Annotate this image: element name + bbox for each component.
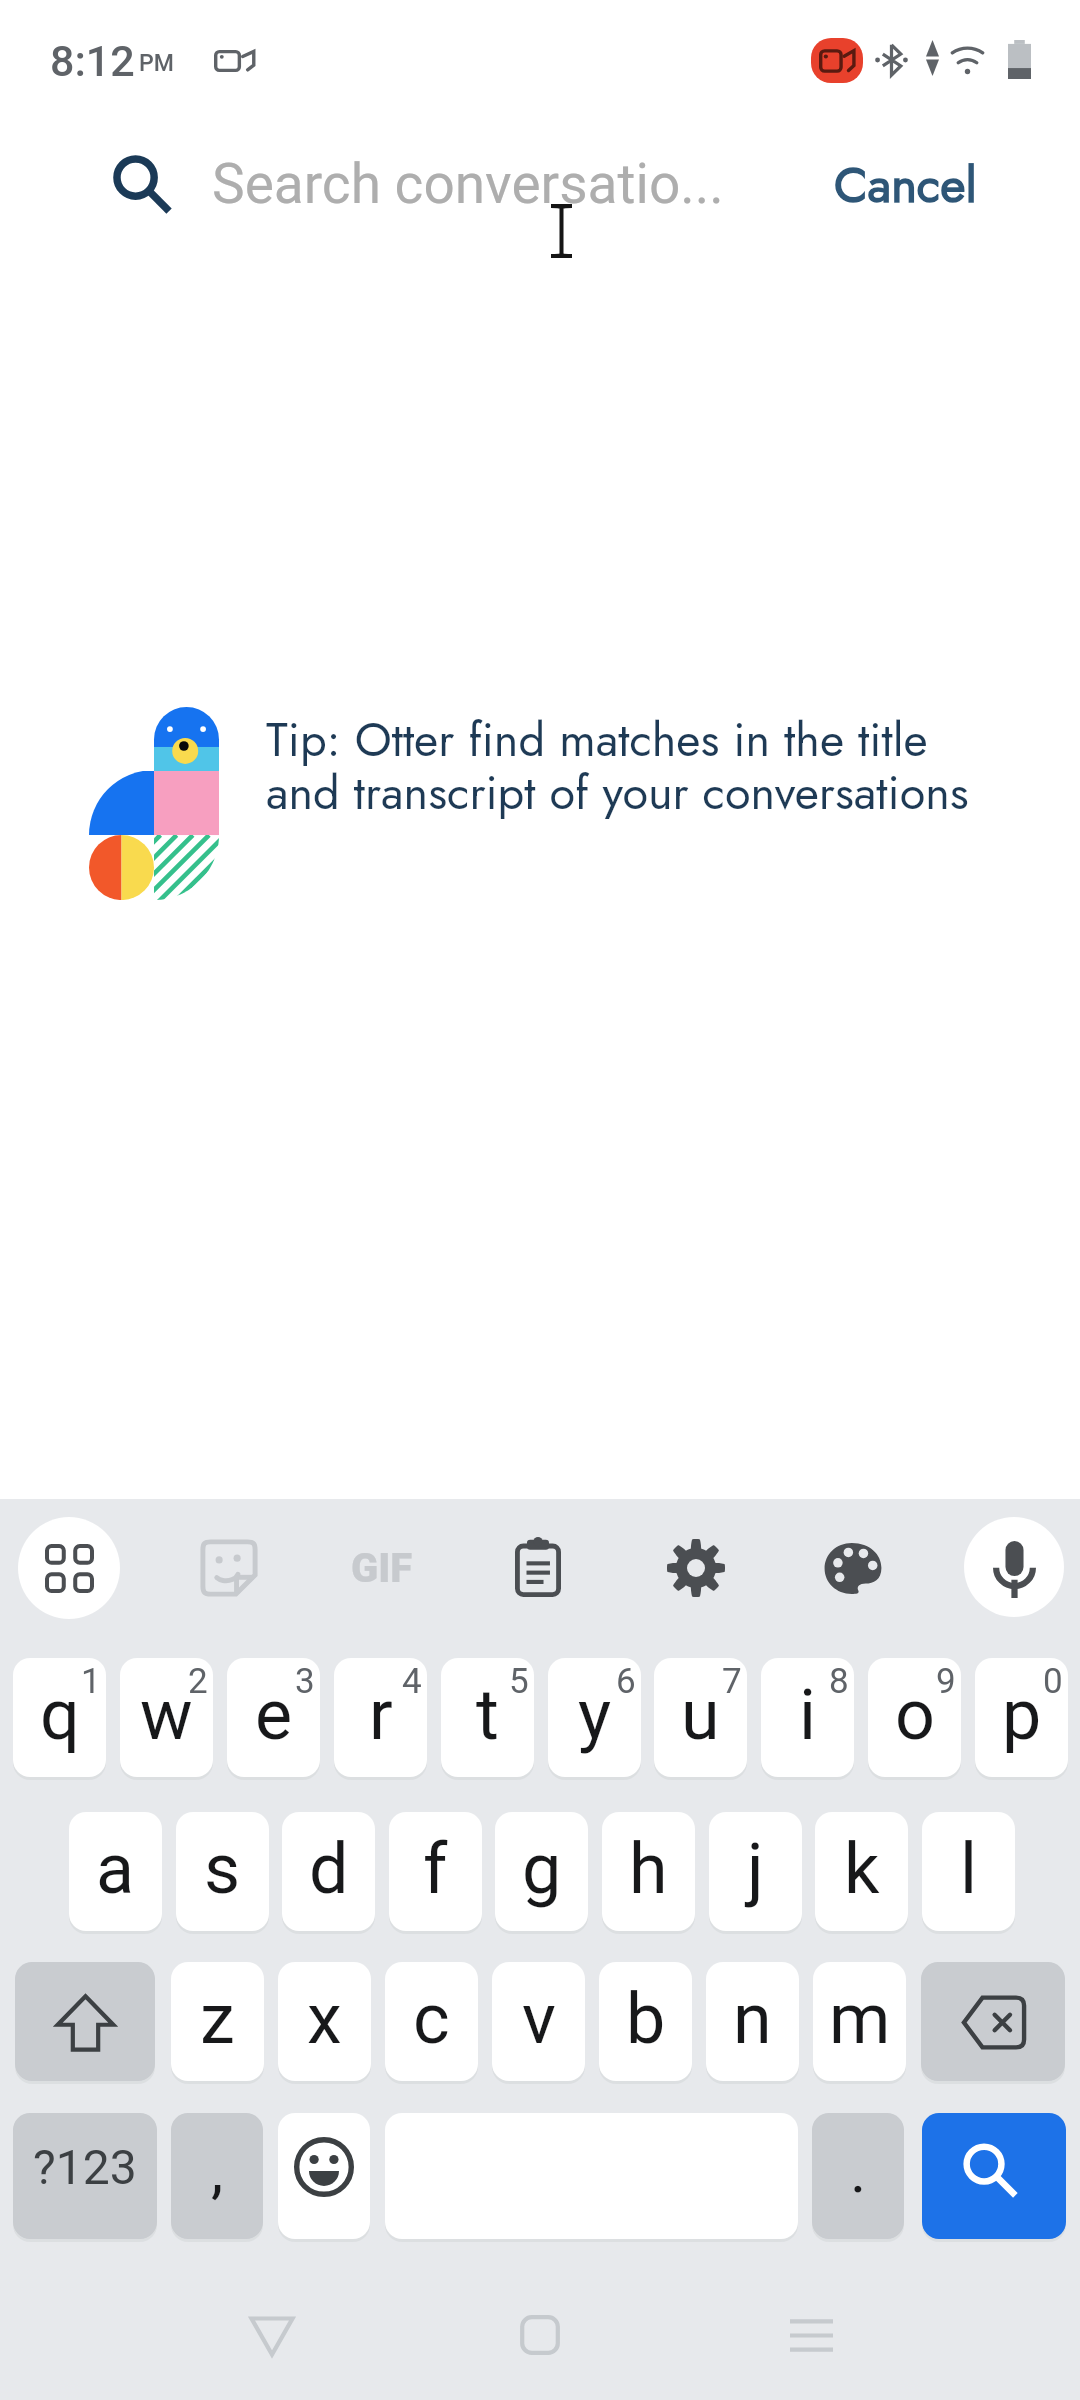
staticText: x xyxy=(307,1978,342,2060)
button[interactable]: Emoji xyxy=(278,2113,370,2239)
button[interactable]: Switch keyboard xyxy=(18,1517,120,1619)
staticText: a xyxy=(96,1828,135,1910)
button[interactable]: g xyxy=(495,1812,588,1931)
other: Search xyxy=(103,145,183,225)
staticText: n xyxy=(733,1978,772,2060)
button[interactable]: Settings xyxy=(646,1518,746,1618)
staticText: r xyxy=(369,1674,393,1756)
staticText: PM xyxy=(139,50,174,77)
staticText: ?123 xyxy=(33,2139,137,2195)
staticText: Cancel xyxy=(834,150,977,221)
staticText: 3 xyxy=(295,1661,315,1702)
staticText: 6 xyxy=(616,1661,636,1702)
staticText: 8:12 xyxy=(50,36,135,86)
button[interactable]: Backspace xyxy=(921,1962,1065,2081)
button[interactable]: m xyxy=(813,1962,906,2081)
button[interactable]: Theme xyxy=(803,1518,903,1618)
button[interactable]: Clipboard xyxy=(488,1518,588,1618)
button[interactable]: q xyxy=(13,1658,106,1777)
staticText: p xyxy=(1002,1674,1042,1756)
staticText: 7 xyxy=(722,1661,742,1702)
button[interactable]: e xyxy=(227,1658,320,1777)
staticText: f xyxy=(423,1828,448,1910)
button[interactable]: p xyxy=(975,1658,1068,1777)
button[interactable]: x xyxy=(278,1962,371,2081)
button[interactable]: Shift xyxy=(15,1962,155,2081)
button[interactable]: h xyxy=(602,1812,695,1931)
staticText: d xyxy=(309,1828,349,1910)
button[interactable]: GIF xyxy=(332,1518,432,1618)
staticText: y xyxy=(578,1674,612,1756)
staticText: b xyxy=(626,1978,666,2060)
staticText: e xyxy=(255,1674,293,1756)
button[interactable]: i xyxy=(761,1658,854,1777)
button[interactable]: Recents xyxy=(766,2295,856,2385)
staticText: 2 xyxy=(188,1661,208,1702)
button[interactable]: Home xyxy=(495,2295,585,2385)
staticText: m xyxy=(829,1978,891,2060)
button[interactable]: r xyxy=(334,1658,427,1777)
staticText: v xyxy=(522,1978,556,2060)
button[interactable]: j xyxy=(709,1812,802,1931)
staticText: w xyxy=(140,1674,193,1756)
staticText: j xyxy=(747,1828,764,1910)
staticText: , xyxy=(211,2134,224,2207)
staticText: i xyxy=(799,1674,817,1756)
button[interactable]: w xyxy=(120,1658,213,1777)
button[interactable]: b xyxy=(599,1962,692,2081)
button[interactable]: t xyxy=(441,1658,534,1777)
staticText: o xyxy=(895,1674,935,1756)
button[interactable]: . xyxy=(812,2113,904,2239)
button[interactable]: f xyxy=(389,1812,482,1931)
staticText: . xyxy=(850,2134,867,2207)
staticText: 0 xyxy=(1043,1661,1063,1702)
button[interactable]: n xyxy=(706,1962,799,2081)
button[interactable]: Voice input xyxy=(964,1517,1064,1617)
button[interactable]: k xyxy=(815,1812,908,1931)
staticText: h xyxy=(629,1828,668,1910)
button[interactable]: z xyxy=(171,1962,264,2081)
staticText: z xyxy=(200,1978,235,2060)
staticText: 9 xyxy=(936,1661,956,1702)
button[interactable]: Back xyxy=(227,2295,317,2385)
staticText: 4 xyxy=(402,1661,422,1702)
staticText: k xyxy=(844,1828,880,1910)
button[interactable]: u xyxy=(654,1658,747,1777)
staticText: GIF xyxy=(351,1545,413,1592)
button[interactable]: , xyxy=(171,2113,263,2239)
staticText: Tip: Otter find matches in the title and… xyxy=(266,706,969,826)
button[interactable]: o xyxy=(868,1658,961,1777)
button[interactable]: v xyxy=(492,1962,585,2081)
button[interactable]: c xyxy=(385,1962,478,2081)
button[interactable]: ?123 xyxy=(13,2113,157,2239)
staticText: 5 xyxy=(509,1661,529,1702)
staticText: c xyxy=(413,1978,450,2060)
staticText: u xyxy=(681,1674,720,1756)
staticText: s xyxy=(204,1828,241,1910)
staticText: l xyxy=(960,1828,978,1910)
button[interactable]: d xyxy=(282,1812,375,1931)
staticText: Search conversatio... xyxy=(212,152,724,216)
button[interactable]: a xyxy=(69,1812,162,1931)
button[interactable]: l xyxy=(922,1812,1015,1931)
staticText: t xyxy=(476,1674,499,1756)
staticText: q xyxy=(40,1674,80,1756)
button[interactable]: Cancel xyxy=(834,150,977,221)
staticText: g xyxy=(522,1828,562,1910)
button[interactable]: y xyxy=(548,1658,641,1777)
staticText: 1 xyxy=(81,1661,101,1702)
button[interactable]: s xyxy=(176,1812,269,1931)
staticText: 8 xyxy=(829,1661,849,1702)
button[interactable]: Stickers xyxy=(179,1518,279,1618)
button[interactable]: Search xyxy=(922,2113,1066,2239)
